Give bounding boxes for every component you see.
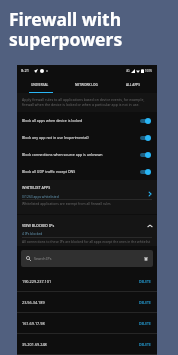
button[interactable]: 35.201.69.248 [17, 334, 157, 354]
other: Collapse [147, 223, 153, 229]
button[interactable]: Block all UDP traffic except DNS [17, 163, 157, 180]
button[interactable]: Toggle [140, 169, 150, 175]
staticText: 23.56.34.189 [22, 300, 139, 305]
button[interactable]: Toggle [140, 152, 150, 158]
button[interactable]: Toggle [140, 135, 150, 141]
other: Expand [147, 191, 153, 197]
staticText: DELETE [139, 279, 151, 284]
staticText: ALL APPS [126, 83, 141, 87]
button[interactable]: VIEW BLOCKED IPs [17, 215, 157, 246]
staticText: 8:21 [21, 68, 29, 73]
button[interactable]: NETWORK LOG [63, 76, 110, 93]
staticText: DELETE [139, 300, 151, 305]
button[interactable]: Search IPs [21, 250, 153, 267]
staticText: VIEW BLOCKED IPs [22, 223, 55, 228]
button[interactable]: Block any app not in use (experimental) [17, 129, 157, 146]
staticText: Block all UDP traffic except DNS [22, 169, 140, 174]
staticText: DELETE [139, 321, 151, 326]
staticText: WHITELIST APPS [22, 185, 51, 190]
staticText: Block connections when source app is unk… [22, 152, 140, 157]
staticText: Search IPs [34, 256, 143, 261]
staticText: Whitelisted applications are exempt from… [22, 201, 111, 205]
staticText: NETWORK LOG [75, 83, 98, 87]
staticText: Apply firewall rules to all applications… [22, 97, 152, 107]
staticText: Block any app not in use (experimental) [22, 135, 140, 140]
staticText: 35.201.69.248 [22, 342, 139, 347]
staticText: Block all apps when device is locked [22, 118, 140, 123]
button[interactable]: 161.69.17.98 [17, 313, 157, 333]
button[interactable]: UNIVERSAL [17, 76, 63, 93]
staticText: 190.229.237.101 [22, 279, 139, 284]
button[interactable]: Block connections when source app is unk… [17, 146, 157, 163]
button[interactable]: Delete all [143, 256, 149, 262]
staticText: Firewall with superpowers [9, 7, 123, 51]
staticText: UNIVERSAL [31, 83, 49, 87]
button[interactable]: 23.56.34.189 [17, 292, 157, 312]
staticText: All connections to these IPs are blocked… [22, 239, 151, 243]
button[interactable]: Toggle [140, 118, 150, 124]
staticText: 0/1263 apps whitelisted [22, 194, 59, 198]
staticText: 161.69.17.98 [22, 321, 139, 326]
staticText: 100% [145, 69, 153, 73]
staticText: 4G [126, 69, 130, 73]
button[interactable]: Block all apps when device is locked [17, 112, 157, 129]
staticText: 4 IPs blocked [22, 231, 43, 235]
button[interactable]: WHITELIST APPS [17, 180, 157, 214]
button[interactable]: 190.229.237.101 [17, 271, 157, 291]
button[interactable]: ALL APPS [110, 76, 157, 93]
staticText: DELETE [139, 342, 151, 347]
